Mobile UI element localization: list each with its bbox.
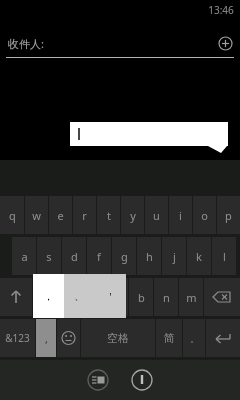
staticText: 空格 xyxy=(107,331,129,345)
button[interactable]: , xyxy=(36,319,56,357)
button[interactable]: a xyxy=(12,237,36,275)
button[interactable]: Emoji xyxy=(57,319,80,357)
staticText: t xyxy=(107,208,111,223)
button[interactable]: 简 xyxy=(156,319,182,357)
button[interactable]: Send xyxy=(87,369,109,391)
button[interactable]: m xyxy=(179,278,203,316)
button[interactable]: w xyxy=(25,196,48,234)
button[interactable]: d xyxy=(62,237,86,275)
button[interactable]: Add recipient xyxy=(218,36,233,51)
staticText: 13:46 xyxy=(208,3,234,17)
staticText: y xyxy=(130,208,136,223)
button[interactable]: p xyxy=(217,196,240,234)
staticText: q xyxy=(9,208,16,223)
button[interactable]: k xyxy=(187,237,211,275)
button[interactable]: 。 xyxy=(183,319,205,357)
staticText: ， xyxy=(43,289,54,303)
button[interactable]: Attach xyxy=(131,369,153,391)
staticText: l xyxy=(223,249,226,264)
staticText: f xyxy=(97,249,101,264)
button[interactable]: ， xyxy=(33,274,64,318)
button[interactable]: g xyxy=(112,237,136,275)
button[interactable]: b xyxy=(129,278,153,316)
button[interactable]: 收件人: xyxy=(0,30,240,56)
staticText: n xyxy=(163,290,170,305)
button[interactable]: &123 xyxy=(0,319,35,357)
staticText: a xyxy=(21,249,28,264)
staticText: i xyxy=(179,208,182,223)
staticText: m xyxy=(186,290,197,305)
button[interactable]: i xyxy=(169,196,192,234)
staticText: , xyxy=(45,331,48,346)
button[interactable] xyxy=(57,278,80,316)
button[interactable]: j xyxy=(162,237,186,275)
button[interactable]: q xyxy=(0,196,24,234)
staticText: 。 xyxy=(190,333,199,344)
staticText: g xyxy=(121,249,128,264)
button[interactable]: Backspace xyxy=(204,278,240,316)
button[interactable]: r xyxy=(73,196,96,234)
staticText: k xyxy=(196,249,202,264)
button[interactable]: o xyxy=(193,196,216,234)
button[interactable]: 空格 xyxy=(81,319,155,357)
button[interactable] xyxy=(105,278,128,316)
staticText: u xyxy=(153,208,160,223)
button[interactable]: t xyxy=(97,196,120,234)
staticText: o xyxy=(201,208,208,223)
button[interactable]: Enter xyxy=(206,319,240,357)
staticText: b xyxy=(138,290,145,305)
button[interactable]: ' xyxy=(95,274,126,318)
staticText: 简 xyxy=(164,331,175,345)
staticText: s xyxy=(46,249,52,264)
button[interactable]: y xyxy=(121,196,144,234)
staticText: d xyxy=(71,249,78,264)
staticText: 、 xyxy=(74,289,85,303)
staticText: 收件人: xyxy=(8,36,44,51)
staticText: r xyxy=(82,208,87,223)
button[interactable] xyxy=(33,278,56,316)
button[interactable]: f xyxy=(87,237,111,275)
button[interactable]: e xyxy=(49,196,72,234)
button[interactable]: l xyxy=(212,237,236,275)
staticText: w xyxy=(32,208,41,223)
staticText: j xyxy=(173,249,176,264)
button[interactable]: Shift xyxy=(0,278,32,316)
button[interactable]: h xyxy=(137,237,161,275)
staticText: p xyxy=(225,208,232,223)
staticText: h xyxy=(146,249,153,264)
button[interactable]: s xyxy=(37,237,61,275)
button[interactable]: u xyxy=(145,196,168,234)
staticText: e xyxy=(57,208,64,223)
staticText: &123 xyxy=(5,331,30,345)
staticText: ' xyxy=(109,289,112,304)
button[interactable]: n xyxy=(154,278,178,316)
button[interactable]: 、 xyxy=(64,274,95,318)
